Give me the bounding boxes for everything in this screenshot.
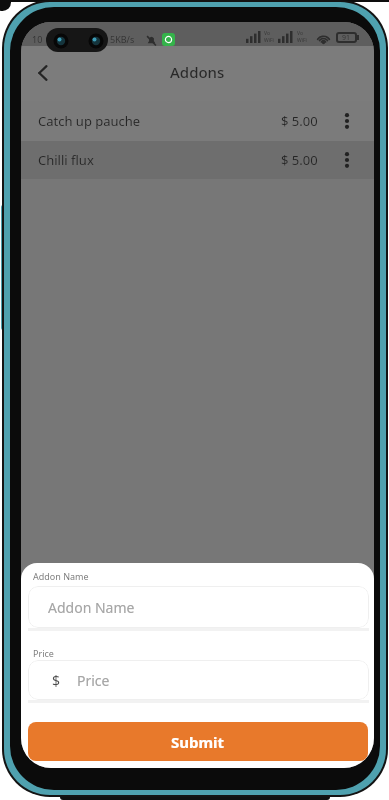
staticText: Catch up pauche — [38, 112, 141, 130]
staticText: WiFi — [297, 37, 307, 44]
staticText: Vo — [297, 30, 303, 37]
staticText: Chilli flux — [38, 151, 94, 169]
staticText: Price — [33, 647, 54, 659]
staticText: 91 — [342, 33, 351, 43]
button[interactable]: Catch up pauche — [21, 101, 374, 141]
staticText: $ 5.00 — [281, 112, 318, 130]
button[interactable]: Submit — [28, 722, 368, 761]
staticText: Addon Name — [33, 570, 89, 582]
staticText: Submit — [171, 732, 225, 752]
staticText: $ — [52, 671, 61, 690]
staticText: 5KB/s — [110, 33, 135, 45]
button[interactable] — [338, 151, 356, 169]
button[interactable] — [33, 64, 51, 82]
staticText: Vo — [264, 30, 270, 37]
staticText: Addon Name — [48, 598, 135, 617]
staticText: Addons — [170, 62, 225, 82]
staticText: 10 — [32, 33, 43, 45]
button[interactable]: $ — [28, 660, 369, 700]
staticText: WiFi — [264, 37, 274, 44]
button[interactable]: Chilli flux — [21, 141, 374, 179]
staticText: $ 5.00 — [281, 151, 318, 169]
button[interactable] — [338, 112, 356, 130]
button[interactable]: Addon Name — [28, 586, 369, 628]
staticText: Price — [77, 671, 110, 690]
